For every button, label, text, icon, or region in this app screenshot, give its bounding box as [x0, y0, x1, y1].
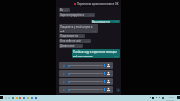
other: Play	[63, 81, 65, 83]
button[interactable]: Я не тебе не чей гиги делал	[59, 39, 91, 43]
button[interactable]: Ваш отзыв тут	[91, 20, 120, 23]
staticText: Зарегистрируйтесь где-нибудь	[60, 13, 89, 17]
button[interactable]: App	[27, 97, 29, 99]
button[interactable]: Close	[116, 88, 120, 92]
button[interactable]: Переписка одноклассники в ОК	[56, 0, 121, 7]
staticText: 15:2	[89, 14, 94, 17]
staticText: 14:2	[114, 20, 119, 23]
staticText: Всем	[60, 8, 64, 12]
button[interactable]: Пищаются у этой штуки и все 100	[59, 24, 98, 33]
staticText: 16:4	[114, 55, 119, 57]
button[interactable]: Play	[59, 78, 113, 85]
staticText: всё там сделаю	[73, 55, 93, 57]
staticText: Пищаются у этой штуки и все 100	[60, 25, 97, 29]
staticText: 12.04.21	[166, 99, 175, 101]
staticText: 11:0	[92, 30, 97, 32]
other: Play	[63, 73, 65, 75]
staticText: Пожелание ты сдал	[60, 34, 79, 38]
other: Sender avatar	[106, 87, 111, 92]
button[interactable]: Play	[59, 70, 113, 77]
staticText: 14:09	[168, 96, 174, 99]
staticText: 14:0	[77, 45, 82, 48]
staticText: Делать всю	[60, 44, 75, 48]
button[interactable]: Делать всю	[59, 44, 83, 48]
staticText: Я не тебе не чей гиги делал	[60, 39, 85, 43]
staticText: 12:1	[64, 9, 69, 12]
button[interactable]: Pause	[59, 62, 113, 69]
other: Sender avatar	[106, 63, 111, 68]
staticText: Ваш отзыв тут	[92, 20, 110, 23]
button[interactable]: Пожелание ты сдал	[59, 34, 85, 38]
staticText: Я сейчас иду в отделение полиции и	[73, 50, 119, 54]
button[interactable]: App	[23, 97, 25, 99]
button[interactable]: App	[31, 97, 33, 99]
staticText: 13:4	[85, 40, 90, 43]
staticText: руб	[60, 30, 65, 32]
staticText: Переписка одноклассники в ОК	[77, 2, 119, 6]
button[interactable]: Play	[59, 86, 113, 93]
button[interactable]: App	[16, 97, 18, 99]
staticText: 13:1	[79, 35, 84, 38]
button[interactable]: App	[19, 97, 21, 99]
button[interactable]: Я сейчас иду в отделение полиции и	[72, 49, 120, 58]
button[interactable]: Зарегистрируйтесь где-нибудь	[59, 13, 95, 17]
other: Play	[63, 89, 65, 91]
other: Sender avatar	[106, 79, 111, 84]
button[interactable]: App	[12, 97, 14, 99]
button[interactable]: Всем	[59, 8, 70, 12]
button[interactable]: App	[35, 97, 37, 99]
button[interactable]: 14:09	[166, 96, 175, 101]
other: Sender avatar	[106, 71, 111, 76]
